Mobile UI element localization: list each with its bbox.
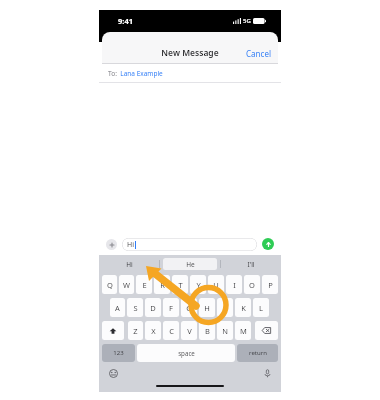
button[interactable]: Add attachment [106, 239, 117, 250]
staticText: P [268, 280, 273, 290]
button[interactable]: U [208, 275, 224, 294]
staticText: K [241, 303, 246, 313]
button[interactable]: 123 [102, 344, 135, 362]
button[interactable]: Send [262, 238, 274, 250]
staticText: R [160, 280, 165, 290]
button[interactable]: Y [190, 275, 206, 294]
staticText: C [169, 326, 174, 336]
staticText: N [222, 326, 228, 336]
staticText: 9:41 [118, 16, 133, 26]
button[interactable]: Q [102, 275, 117, 294]
staticText: Y [196, 280, 201, 290]
button[interactable]: Key [102, 321, 124, 340]
staticText: D [150, 303, 156, 313]
staticText: New Message [161, 47, 219, 59]
staticText: I [233, 280, 236, 290]
button[interactable]: Cancel [239, 44, 278, 63]
staticText: V [187, 326, 192, 336]
staticText: G [186, 303, 192, 313]
button[interactable]: O [244, 275, 260, 294]
button[interactable]: X [145, 321, 161, 340]
button[interactable]: T [172, 275, 188, 294]
staticText: S [133, 303, 138, 313]
button[interactable]: J [217, 298, 233, 317]
staticText: A [115, 303, 120, 313]
staticText: Q [107, 280, 113, 290]
button[interactable]: He [163, 258, 217, 270]
staticText: T [178, 280, 183, 290]
staticText: space [178, 349, 195, 357]
staticText: Z [133, 326, 138, 336]
button[interactable]: Hi [122, 238, 257, 251]
button[interactable]: H [199, 298, 215, 317]
staticText: E [142, 280, 147, 290]
button[interactable]: M [235, 321, 251, 340]
button[interactable]: N [217, 321, 233, 340]
staticText: X [151, 326, 156, 336]
staticText: To: [108, 69, 117, 78]
button[interactable]: B [199, 321, 215, 340]
button[interactable]: Dictation [261, 367, 273, 379]
button[interactable]: return [237, 344, 278, 362]
staticText: Lana Example [120, 69, 163, 78]
button[interactable]: C [163, 321, 179, 340]
button[interactable]: Hi [102, 258, 156, 270]
button[interactable]: R [154, 275, 170, 294]
staticText: L [259, 303, 263, 313]
button[interactable]: K [235, 298, 251, 317]
button[interactable]: E [136, 275, 152, 294]
button[interactable]: I [226, 275, 242, 294]
button[interactable]: Key [255, 321, 278, 340]
button[interactable]: L [253, 298, 269, 317]
button[interactable]: Z [128, 321, 143, 340]
staticText: Hi [126, 260, 133, 269]
button[interactable]: P [262, 275, 278, 294]
staticText: 5G [243, 17, 251, 25]
button[interactable]: Emoji [107, 367, 119, 379]
staticText: He [186, 260, 195, 269]
button[interactable]: A [110, 298, 125, 317]
staticText: Cancel [246, 48, 271, 59]
button[interactable]: D [145, 298, 161, 317]
staticText: H [204, 303, 210, 313]
button[interactable]: space [137, 344, 235, 362]
button[interactable]: G [181, 298, 197, 317]
staticText: Hi [127, 240, 134, 250]
button[interactable]: V [181, 321, 197, 340]
staticText: M [240, 326, 247, 336]
staticText: 123 [113, 349, 124, 357]
button[interactable]: S [127, 298, 143, 317]
staticText: W [123, 280, 130, 290]
staticText: F [169, 303, 173, 313]
staticText: B [205, 326, 210, 336]
staticText: O [249, 280, 255, 290]
button[interactable]: W [119, 275, 134, 294]
button[interactable]: I'll [224, 258, 278, 270]
staticText: return [249, 349, 267, 357]
staticText: I'll [247, 260, 255, 269]
button[interactable]: F [163, 298, 179, 317]
staticText: U [213, 280, 219, 290]
button[interactable]: To: [99, 64, 281, 83]
